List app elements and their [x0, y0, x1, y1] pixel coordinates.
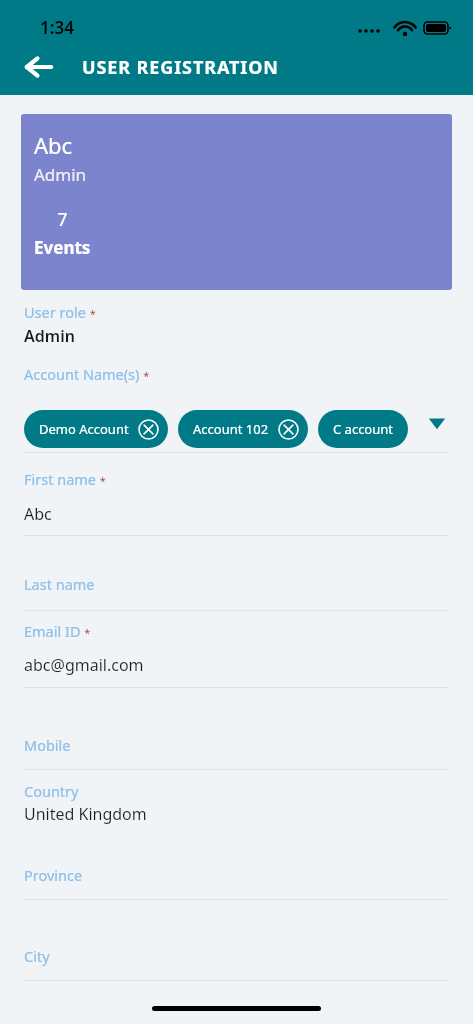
staticText: Events — [34, 236, 91, 259]
staticText: Country — [24, 781, 79, 801]
other: Status icons — [358, 18, 450, 38]
staticText: Account Name(s) * — [24, 364, 150, 384]
button[interactable]: Open dropdown — [425, 410, 449, 434]
staticText: abc@gmail.com — [24, 654, 144, 676]
staticText: Last name — [24, 574, 95, 594]
staticText: Province — [24, 865, 83, 885]
staticText: Demo Account — [39, 420, 129, 438]
staticText: Admin — [34, 163, 87, 186]
staticText: United Kingdom — [24, 803, 147, 825]
staticText: Abc — [24, 503, 52, 525]
staticText: City — [24, 946, 50, 966]
staticText: Account 102 — [193, 420, 269, 438]
button[interactable]: Back — [20, 49, 58, 85]
staticText: USER REGISTRATION — [82, 55, 279, 80]
button[interactable]: Remove Demo Account — [138, 419, 159, 440]
staticText: C account — [333, 420, 393, 438]
button[interactable]: Demo Account — [24, 410, 168, 448]
staticText: 1:34 — [40, 16, 74, 39]
button[interactable]: Remove Account 102 — [278, 419, 299, 440]
staticText: First name * — [24, 469, 106, 489]
staticText: Admin — [24, 325, 75, 347]
button[interactable]: Abc — [21, 114, 452, 290]
staticText: User role * — [24, 302, 96, 322]
button[interactable]: C account — [318, 410, 408, 448]
staticText: Mobile — [24, 735, 71, 755]
staticText: 7 — [57, 207, 68, 232]
button[interactable]: Account 102 — [178, 410, 308, 448]
staticText: Abc — [34, 130, 73, 160]
staticText: Email ID * — [24, 621, 91, 641]
